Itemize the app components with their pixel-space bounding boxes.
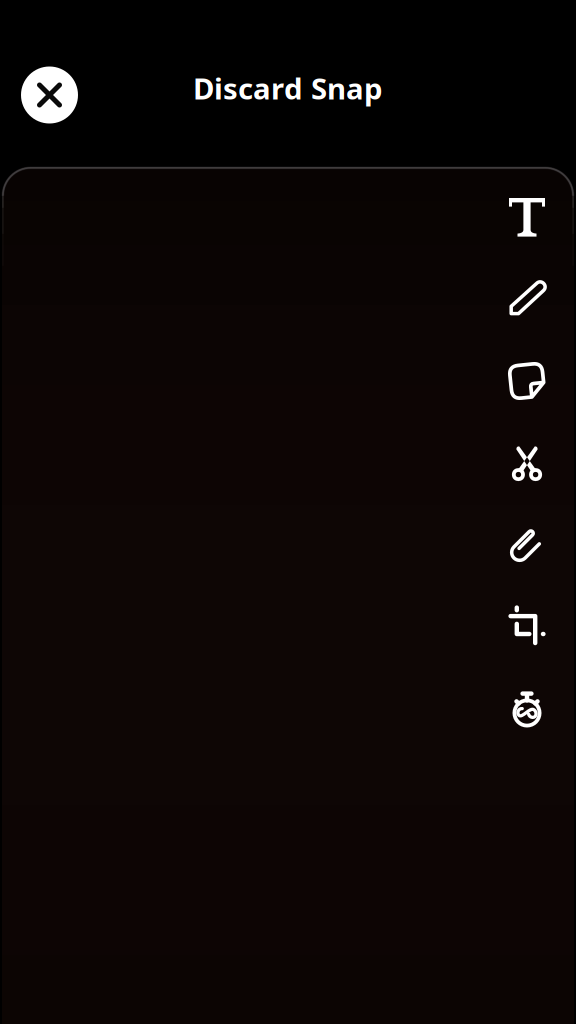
button[interactable]: Crop <box>496 596 558 658</box>
button[interactable]: Cutout <box>496 432 558 494</box>
button[interactable]: Close <box>14 60 84 130</box>
button[interactable]: Text <box>496 186 558 248</box>
staticText: Discard Snap <box>193 68 383 107</box>
button[interactable]: Stickers <box>496 350 558 412</box>
button[interactable]: Attach link <box>496 514 558 576</box>
button[interactable]: Draw <box>496 268 558 330</box>
button[interactable]: Timer <box>496 678 558 740</box>
